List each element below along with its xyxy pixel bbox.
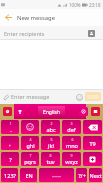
button[interactable]: Emoji (74, 92, 84, 102)
staticText: 123? (4, 172, 16, 179)
staticText: mno (66, 142, 78, 149)
staticText: def (67, 126, 76, 133)
button[interactable]: 123? (1, 168, 18, 182)
staticText: Next (89, 172, 102, 179)
staticText: SEND (87, 94, 99, 100)
staticText: 4 (29, 137, 32, 142)
button[interactable]: 7 (21, 152, 39, 166)
staticText: 3 (70, 121, 73, 126)
staticText: 1 (9, 121, 12, 126)
staticText: ?/+ (78, 172, 86, 179)
button[interactable]: EN (20, 168, 37, 182)
staticText: English (43, 109, 61, 116)
staticText: 7 (29, 153, 32, 158)
button[interactable]: 3 (62, 120, 81, 134)
staticText: 100% (69, 2, 81, 8)
staticText: 2 (50, 121, 53, 126)
button[interactable]: Backspace (83, 120, 102, 134)
staticText: wxyz (65, 158, 78, 165)
button[interactable]: Smiley (21, 120, 39, 134)
button[interactable]: 6 (62, 136, 81, 150)
staticText: 8 (49, 153, 52, 158)
staticText: T9 (89, 140, 96, 147)
button[interactable]: T9 (83, 136, 102, 150)
staticText: , (9, 140, 11, 147)
staticText: ? (9, 156, 12, 163)
staticText: jkl (48, 142, 54, 149)
button[interactable]: 1 (1, 120, 19, 134)
button[interactable]: Next (89, 168, 102, 182)
button[interactable]: , (1, 136, 19, 150)
button[interactable]: SEND (85, 92, 101, 101)
staticText: 5 (50, 137, 53, 142)
staticText: Enter message (11, 93, 50, 100)
staticText: ghi (26, 142, 35, 149)
button[interactable]: Add contact (88, 30, 95, 37)
button[interactable]: ? (1, 152, 19, 166)
staticText: abc (46, 126, 56, 133)
button[interactable]: Grid (83, 152, 102, 166)
button[interactable]: Theme (15, 107, 24, 116)
staticText: New message (17, 14, 55, 22)
staticText: . (10, 126, 12, 133)
button[interactable]: 4 (21, 136, 39, 150)
staticText: tuv (46, 158, 55, 165)
button[interactable]: Back (3, 12, 14, 23)
button[interactable]: Clipboard (91, 107, 100, 116)
staticText: Enter recipients (4, 30, 45, 37)
button[interactable]: English (38, 106, 65, 118)
button[interactable]: Emoji (3, 107, 12, 116)
staticText: pqrs (24, 158, 36, 165)
staticText: 6 (71, 137, 74, 142)
button[interactable]: Settings (79, 107, 88, 116)
staticText: 23:18 (89, 2, 101, 8)
button[interactable]: Space (39, 168, 74, 182)
button[interactable]: 5 (41, 136, 60, 150)
button[interactable]: 9 (62, 152, 81, 166)
staticText: EN (25, 172, 33, 179)
button[interactable]: 8 (41, 152, 60, 166)
button[interactable]: 2 (41, 120, 60, 134)
staticText: 9 (70, 153, 73, 158)
button[interactable]: Attach (1, 92, 11, 102)
button[interactable]: ?/+ (76, 168, 87, 182)
